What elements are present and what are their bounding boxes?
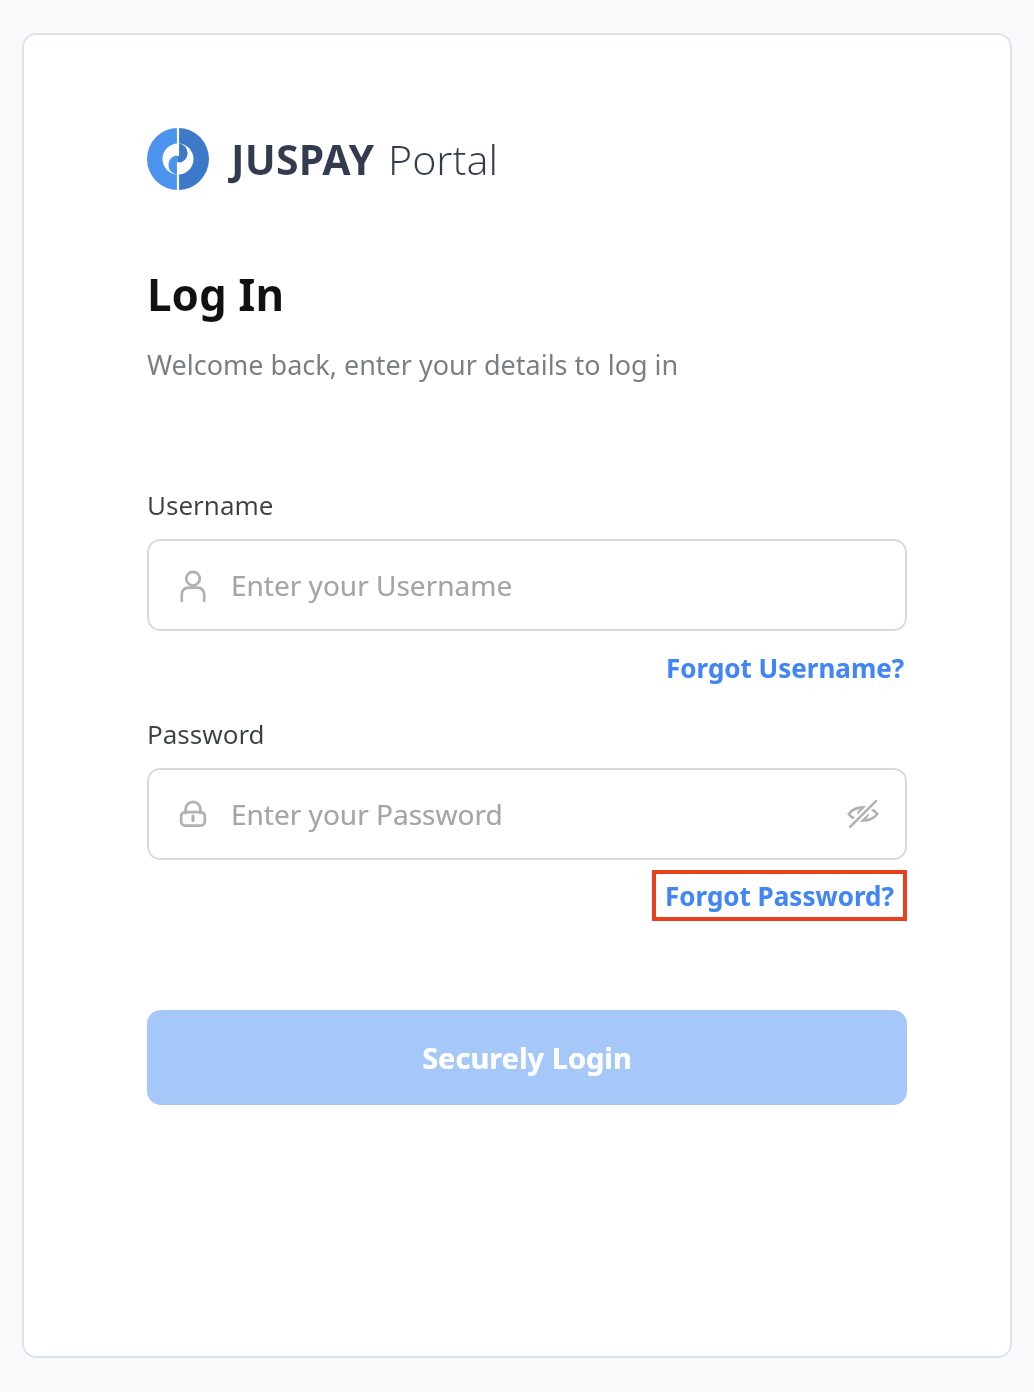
button[interactable]: Securely Login bbox=[147, 1010, 907, 1105]
button[interactable]: Forgot Password? bbox=[652, 870, 907, 921]
staticText: Enter your Password bbox=[231, 795, 503, 833]
staticText: Portal bbox=[388, 131, 498, 187]
staticText: Welcome back, enter your details to log … bbox=[147, 346, 679, 383]
staticText: Enter your Username bbox=[231, 566, 513, 604]
button[interactable]: Enter your Username bbox=[147, 539, 907, 631]
staticText: Username bbox=[147, 487, 274, 522]
button[interactable]: Enter your Password bbox=[147, 768, 907, 860]
staticText: Password bbox=[147, 716, 265, 751]
staticText: JUSPAY bbox=[231, 131, 375, 187]
staticText: Log In bbox=[147, 264, 285, 324]
button[interactable]: Forgot Username? bbox=[664, 647, 907, 688]
button[interactable]: Show password bbox=[841, 792, 885, 836]
staticText: Forgot Username? bbox=[666, 650, 905, 685]
staticText: Securely Login bbox=[422, 1038, 632, 1077]
staticText: Forgot Password? bbox=[665, 878, 894, 913]
